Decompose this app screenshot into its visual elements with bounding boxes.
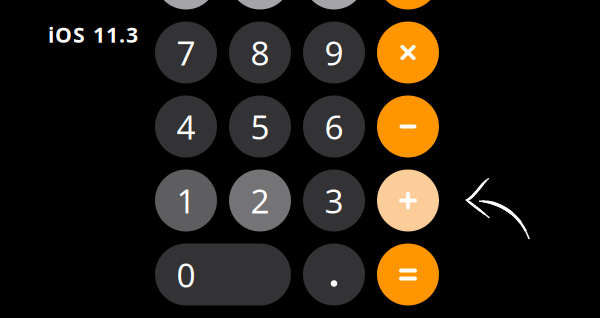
button[interactable]: Minus [377,95,439,157]
staticText: iOS 11.3 [48,20,138,49]
button[interactable]: Plus minus [229,0,291,9]
staticText: 5 [250,104,269,149]
staticText: 2 [250,178,269,223]
staticText: 9 [324,30,343,75]
button[interactable]: 9 [303,21,365,83]
button[interactable]: Divide [377,0,439,9]
button[interactable]: 2 [229,169,291,231]
button[interactable]: 7 [155,21,217,83]
button[interactable]: Decimal point [303,243,365,305]
staticText: 7 [176,30,195,75]
button[interactable]: Percent [303,0,365,9]
staticText: 8 [250,30,269,75]
staticText: 0 [176,252,195,297]
button[interactable]: 8 [229,21,291,83]
staticText: 4 [176,104,195,149]
button[interactable]: Equals [377,243,439,305]
button[interactable]: 6 [303,95,365,157]
button[interactable]: 4 [155,95,217,157]
button[interactable]: 5 [229,95,291,157]
staticText: 3 [324,178,343,223]
button[interactable]: 3 [303,169,365,231]
button[interactable]: AC [155,0,217,9]
staticText: 1 [176,178,195,223]
button[interactable]: Multiply [377,21,439,83]
button[interactable]: 1 [155,169,217,231]
button[interactable]: Plus [377,169,439,231]
staticText: 6 [324,104,343,149]
button[interactable]: 0 [155,243,291,305]
